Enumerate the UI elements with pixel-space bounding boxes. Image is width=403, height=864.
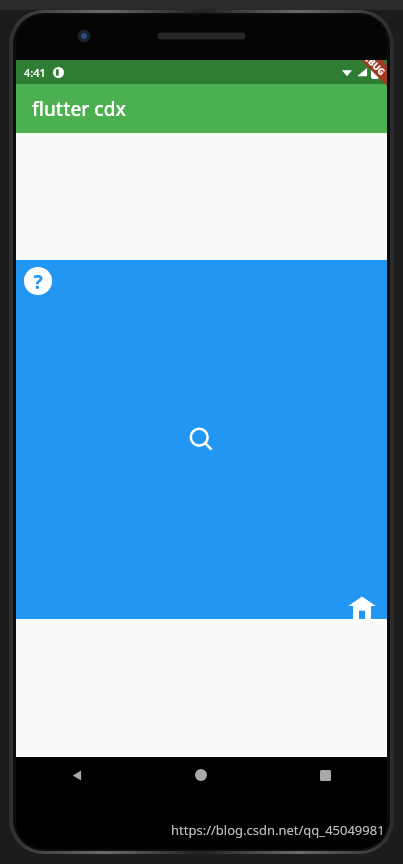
staticText: 4:41 [24, 65, 46, 80]
staticText: flutter cdx [32, 96, 126, 122]
button[interactable]: Search [182, 420, 222, 460]
staticText: DEBUG [358, 60, 387, 77]
button[interactable]: Back [16, 757, 139, 793]
staticText: https://blog.csdn.net/qq_45049981 [171, 821, 385, 839]
button[interactable]: Home [139, 757, 263, 793]
button[interactable]: Help [16, 260, 387, 619]
button[interactable]: Recent apps [263, 757, 387, 793]
button[interactable]: Help [22, 265, 54, 297]
staticText: ? [33, 268, 43, 295]
button[interactable]: Home [347, 595, 377, 619]
